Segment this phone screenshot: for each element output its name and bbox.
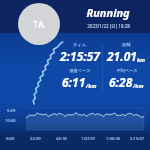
- staticText: 10:56: [5, 118, 16, 124]
- button[interactable]: Pace chart: [0, 104, 150, 150]
- staticText: 2:15:57: [130, 136, 145, 142]
- button[interactable]: Profile: [18, 3, 60, 45]
- staticText: /km: [86, 82, 97, 89]
- button[interactable]: 距離: [103, 42, 150, 64]
- staticText: 6:28: [109, 74, 133, 90]
- button[interactable]: タイム: [56, 42, 103, 64]
- staticText: 1:30:36: [106, 136, 121, 142]
- staticText: 2:15:57: [60, 48, 100, 64]
- staticText: タイム: [73, 42, 86, 47]
- staticText: TA: [33, 18, 45, 30]
- staticText: 45:18: [56, 136, 67, 142]
- staticText: 6:11: [62, 74, 86, 90]
- staticText: 平均ペース: [116, 68, 138, 73]
- staticText: 5:29: [7, 108, 16, 114]
- button[interactable]: 平均ペース: [103, 68, 150, 90]
- button[interactable]: 最速ペース: [56, 68, 103, 90]
- staticText: /km: [133, 82, 144, 89]
- staticText: Running: [86, 5, 130, 20]
- staticText: 0:00: [6, 136, 15, 142]
- staticText: 最速ペース: [69, 68, 91, 73]
- staticText: 1:07:57: [81, 136, 96, 142]
- staticText: 2023/1/22 (日) 10:28: [87, 23, 130, 29]
- staticText: 距離: [122, 42, 131, 47]
- staticText: 22:39: [30, 136, 41, 142]
- staticText: km: [137, 56, 146, 63]
- staticText: 21.01: [107, 48, 137, 64]
